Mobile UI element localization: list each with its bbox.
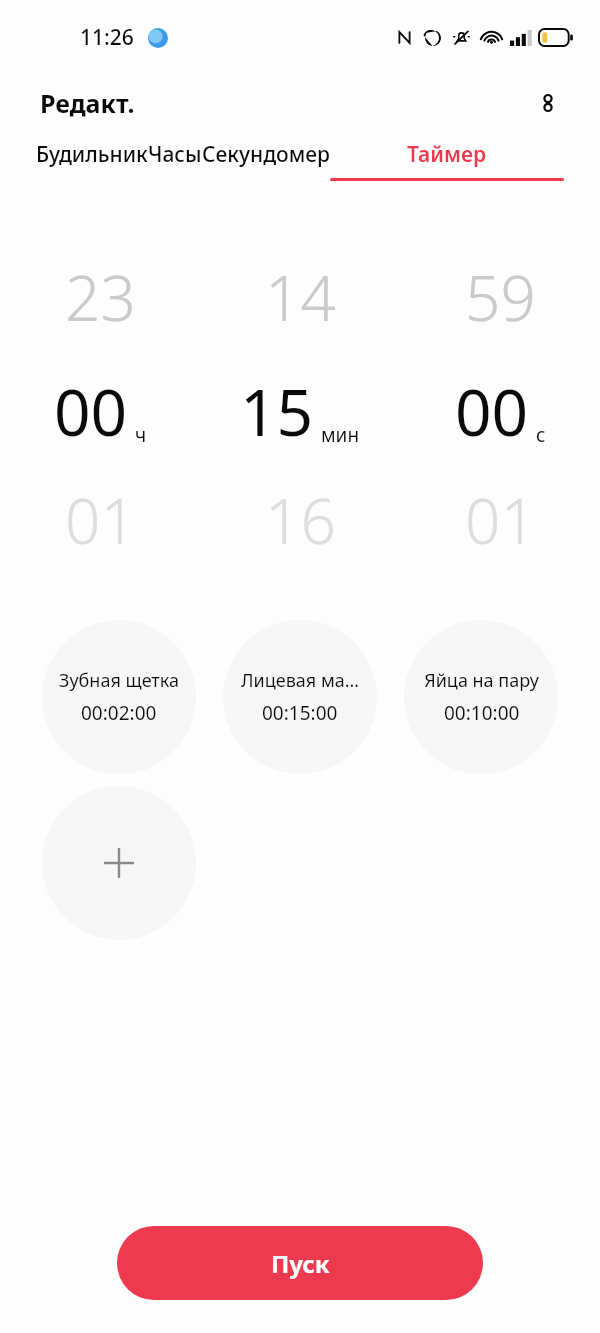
staticText: 11:26 (80, 23, 134, 52)
staticText: Зубная щетка (59, 668, 179, 693)
staticText: Лицевая ма… (241, 668, 359, 693)
staticText: Таймер (407, 140, 487, 169)
staticText: Яйца на пару (424, 668, 539, 693)
staticText: 59 (465, 255, 536, 339)
staticText: 01 (465, 478, 536, 562)
button[interactable]: Яйца на пару (404, 620, 558, 774)
staticText: 16 (265, 478, 336, 562)
button[interactable]: More options (526, 81, 570, 125)
button[interactable]: Будильник (36, 132, 148, 178)
staticText: 01 (65, 478, 136, 562)
staticText: Будильник (36, 140, 148, 169)
staticText: 14 (265, 255, 336, 339)
staticText: 15 (240, 368, 314, 455)
staticText: 00 (455, 368, 529, 455)
staticText: с (536, 422, 546, 448)
button[interactable]: Лицевая ма… (223, 620, 377, 774)
button[interactable]: Таймер (330, 132, 564, 181)
staticText: 23 (65, 255, 136, 339)
staticText: Редакт. (40, 86, 135, 120)
button[interactable]: Add timer preset (42, 786, 196, 940)
staticText: 00:10:00 (444, 700, 520, 726)
button[interactable]: 23 (0, 242, 200, 570)
button[interactable]: Часы (148, 132, 202, 178)
staticText: 00 (54, 368, 128, 455)
button[interactable]: Пуск (117, 1226, 483, 1300)
button[interactable]: 14 (200, 242, 400, 570)
staticText: ч (135, 422, 147, 448)
staticText: 00:02:00 (81, 700, 157, 726)
staticText: Секундомер (202, 140, 330, 169)
staticText: 00:15:00 (262, 700, 338, 726)
staticText: мин (321, 422, 360, 448)
button[interactable]: Секундомер (202, 132, 330, 178)
staticText: Пуск (271, 1247, 330, 1280)
button[interactable]: Зубная щетка (42, 620, 196, 774)
staticText: Часы (148, 140, 202, 169)
button[interactable]: 59 (400, 242, 600, 570)
